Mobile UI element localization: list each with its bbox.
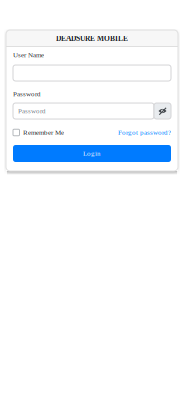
staticText: User Name — [13, 51, 44, 59]
button[interactable]: Remember Me — [13, 129, 64, 136]
staticText: DEADSURE MOBILE — [56, 34, 128, 43]
staticText: Forgot password? — [118, 129, 171, 136]
staticText: Password — [13, 90, 41, 98]
button[interactable]: Login — [13, 145, 171, 162]
button[interactable]: Forgot password? — [118, 129, 171, 136]
staticText: Remember Me — [23, 129, 64, 136]
staticText: Login — [83, 150, 101, 157]
button[interactable]: Show password — [154, 103, 171, 119]
staticText: Password — [18, 107, 46, 115]
